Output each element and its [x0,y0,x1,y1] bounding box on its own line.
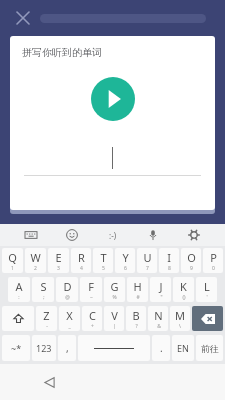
staticText: C [89,308,96,323]
staticText: ~ [90,294,93,301]
staticText: # [136,294,140,301]
button[interactable]: V [104,306,124,331]
staticText: J [159,279,163,294]
button[interactable]: K [173,277,194,302]
button[interactable]: J [150,277,171,302]
staticText: 3 [57,265,60,272]
staticText: Q [8,250,17,265]
staticText: B [132,308,140,323]
staticText: ' [206,294,208,301]
staticText: , [66,341,69,355]
staticText: Z [43,308,50,323]
staticText: 0 [212,265,215,272]
button[interactable]: Backspace [192,306,223,331]
button[interactable]: Shift [2,306,34,331]
button[interactable]: Voice input [143,225,163,245]
button[interactable]: Close [12,7,34,29]
staticText: \ [179,323,181,330]
button[interactable]: Settings [184,225,204,245]
staticText: ? [135,323,138,330]
button[interactable]: R [71,248,91,273]
staticText: @ [65,294,70,301]
staticText: 5 [102,265,105,272]
staticText: H [133,279,142,294]
button[interactable]: Z [36,306,57,331]
staticText: S [40,279,47,294]
staticText: R [78,250,85,265]
staticText: " [160,294,163,301]
button[interactable]: F [80,277,102,302]
staticText: G [110,279,119,294]
button[interactable]: T [93,248,113,273]
staticText: 前往 [201,343,219,354]
button[interactable]: B [126,306,146,331]
button[interactable]: U [137,248,157,273]
button[interactable]: O [181,248,201,273]
button[interactable]: Space [78,335,150,361]
button[interactable]: Emoji [62,225,82,245]
staticText: : [18,294,20,301]
button[interactable]: Back [38,371,60,393]
button[interactable]: C [82,306,102,331]
staticText: ; [43,294,45,301]
button[interactable]: Emoticons [103,225,123,245]
button[interactable]: N [148,306,168,331]
button[interactable]: I [159,248,179,273]
button[interactable]: E [48,248,69,273]
staticText: W [30,250,41,265]
staticText: A [15,279,23,294]
button[interactable]: Y [115,248,135,273]
staticText: N [154,308,163,323]
staticText: D [63,279,72,294]
staticText: EN [177,342,189,354]
button[interactable]: X [59,306,80,331]
staticText: M [175,308,185,323]
staticText: 1 [11,265,14,272]
button[interactable]: Go [196,335,223,361]
staticText: X [66,308,73,323]
staticText: _ [68,323,71,330]
button[interactable]: Comma [58,335,76,361]
button[interactable]: G [104,277,125,302]
button[interactable]: Q [2,248,23,273]
staticText: - [46,323,48,330]
button[interactable]: S [32,277,54,302]
staticText: P [210,250,217,265]
staticText: 7 [146,265,149,272]
staticText: F [88,279,94,294]
staticText: 9 [190,265,193,272]
staticText: V [111,308,118,323]
button[interactable]: Play audio [91,77,135,121]
staticText: I [167,250,171,265]
staticText: U [143,250,152,265]
button[interactable]: Symbols [2,335,30,361]
staticText: () [182,294,186,301]
button[interactable]: Keyboard layout [21,225,41,245]
staticText: L [204,279,210,294]
staticText: & [157,323,161,330]
button[interactable]: Period [152,335,170,361]
button[interactable]: L [196,277,217,302]
staticText: E [55,250,62,265]
staticText: O [187,250,196,265]
button[interactable]: A [8,277,30,302]
staticText: 2 [34,265,37,272]
button[interactable]: Language [172,335,194,361]
button[interactable]: H [127,277,148,302]
staticText: :-) [109,230,117,241]
button[interactable]: Numbers [32,335,56,361]
staticText: + [91,323,94,330]
staticText: 6 [124,265,127,272]
button[interactable] [10,141,215,175]
button[interactable]: D [56,277,78,302]
staticText: % [112,294,117,301]
button[interactable]: W [25,248,46,273]
button[interactable]: M [170,306,190,331]
staticText: . [160,341,163,355]
staticText: 8 [168,265,171,272]
staticText: Y [122,250,129,265]
staticText: K [180,279,187,294]
button[interactable]: P [203,248,223,273]
staticText: 拼写你听到的单词 [22,46,102,59]
